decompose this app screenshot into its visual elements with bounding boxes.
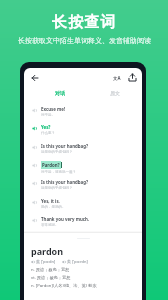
staticText: 对话 <box>55 90 65 96</box>
staticText: 什么事？ <box>41 131 55 135</box>
button[interactable]: Play UK pronunciation <box>31 259 56 264</box>
staticText: Is this your handbag? <box>41 179 89 185</box>
staticText: Thank you very much. <box>41 216 90 222</box>
button[interactable]: Font size <box>111 72 122 83</box>
staticText: 英 [ˈpɑ:dn] <box>36 259 56 264</box>
staticText: Yes, it is. <box>41 198 60 204</box>
staticText: 这是您的手提包吗？ <box>41 186 73 190</box>
button[interactable]: Play audio <box>30 124 38 132</box>
staticText: 美 [ˈpɑ:rdn] <box>67 259 88 264</box>
staticText: 这是您的手提包吗？ <box>41 150 73 154</box>
staticText: 对不起，请再说一遍？ <box>41 170 76 174</box>
staticText: 长按获取文中陌生单词释义、发音辅助阅读 <box>18 36 151 45</box>
button[interactable]: Share <box>127 72 138 83</box>
staticText: 对不起。 <box>41 113 55 117</box>
button[interactable]: Back <box>30 73 40 83</box>
button[interactable]: Play audio <box>30 216 38 224</box>
button[interactable]: Play audio <box>30 179 38 187</box>
button[interactable]: Play audio <box>30 198 38 206</box>
staticText: Yes? <box>41 124 51 130</box>
button[interactable]: 原文 <box>107 88 123 98</box>
button[interactable]: Play US pronunciation <box>62 259 88 264</box>
staticText: Excuse me! <box>41 106 66 112</box>
staticText: 原文 <box>110 90 120 96</box>
staticText: Pardon? <box>42 162 60 168</box>
button[interactable]: Play audio <box>30 143 38 151</box>
staticText: 文A <box>113 75 121 81</box>
staticText: n. [Pardon](人名)(德、法、英) 帕东 <box>31 283 97 289</box>
staticText: vt. 原谅；赦免；宽恕 <box>31 275 71 281</box>
staticText: 非常感谢。 <box>41 223 59 227</box>
staticText: n. 原谅；赦免；宽恕 <box>31 267 70 273</box>
staticText: 长按查词 <box>52 13 117 32</box>
button[interactable]: Play audio <box>30 106 38 114</box>
button[interactable]: Play audio <box>30 161 38 169</box>
staticText: 是的，是我的。 <box>41 205 66 209</box>
staticText: Is this your handbag? <box>41 143 89 149</box>
staticText: pardon <box>31 245 64 257</box>
button[interactable]: 对话 <box>52 88 68 98</box>
